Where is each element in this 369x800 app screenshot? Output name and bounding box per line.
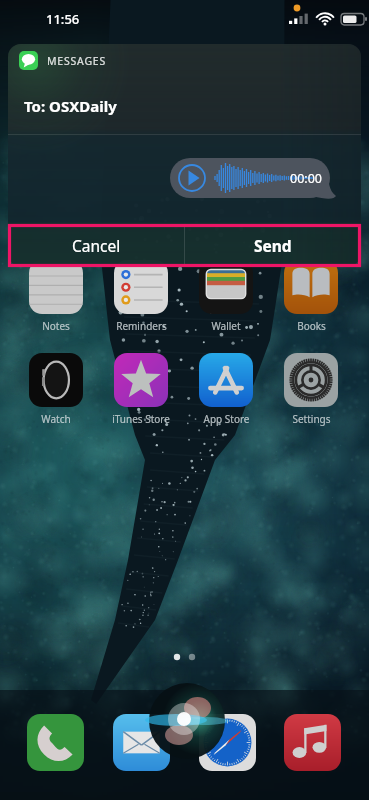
staticText: Wallet <box>211 319 241 333</box>
button[interactable]: Notes <box>16 260 96 333</box>
staticText: To: OSXDaily <box>24 96 117 116</box>
button[interactable]: Wallet <box>186 260 266 333</box>
button[interactable]: App Store <box>186 353 266 426</box>
staticText: Notes <box>42 319 70 333</box>
button[interactable]: Send <box>185 225 361 266</box>
staticText: MESSAGES <box>47 54 107 68</box>
button[interactable]: Settings <box>271 353 351 426</box>
staticText: App Store <box>203 412 250 426</box>
button[interactable]: Phone <box>27 714 84 771</box>
button[interactable]: iTunes Store <box>101 353 181 426</box>
staticText: Settings <box>292 412 331 426</box>
staticText: 11:56 <box>46 10 80 28</box>
staticText: Watch <box>41 412 71 426</box>
staticText: Books <box>297 319 326 333</box>
button[interactable]: Books <box>271 260 351 333</box>
button[interactable]: Watch <box>16 353 96 426</box>
button[interactable]: Safari <box>199 714 256 771</box>
button[interactable]: Music <box>284 714 341 771</box>
staticText: iTunes Store <box>112 412 170 426</box>
staticText: Reminders <box>116 319 167 333</box>
button[interactable]: Cancel <box>8 225 184 266</box>
button[interactable]: Mail <box>113 714 170 771</box>
staticText: Send <box>254 235 292 256</box>
staticText: Cancel <box>72 235 121 256</box>
button[interactable]: Reminders <box>101 260 181 333</box>
staticText: 00:00 <box>290 170 322 187</box>
